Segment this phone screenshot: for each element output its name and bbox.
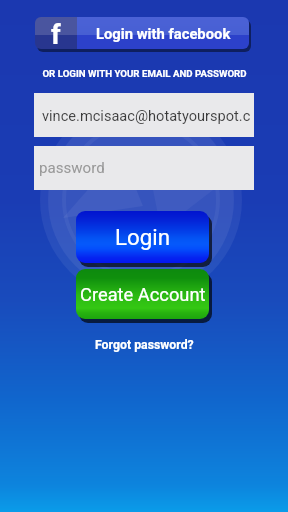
staticText: Login with facebook xyxy=(96,25,231,42)
button[interactable]: Forgot password? xyxy=(91,334,198,356)
button[interactable]: Login xyxy=(76,211,209,263)
staticText: Login xyxy=(115,224,170,250)
button[interactable]: Create Account xyxy=(76,269,209,319)
staticText: password xyxy=(39,159,105,177)
button[interactable]: vince.mcisaac@hotatyourspot.c xyxy=(34,93,254,137)
staticText: f xyxy=(51,19,61,49)
button[interactable]: f xyxy=(35,17,249,49)
staticText: OR LOGIN WITH YOUR EMAIL AND PASSWORD xyxy=(42,68,247,79)
button[interactable]: password xyxy=(34,146,254,190)
staticText: Create Account xyxy=(80,284,206,305)
staticText: vince.mcisaac@hotatyourspot.c xyxy=(42,107,251,124)
staticText: Forgot password? xyxy=(95,338,194,352)
